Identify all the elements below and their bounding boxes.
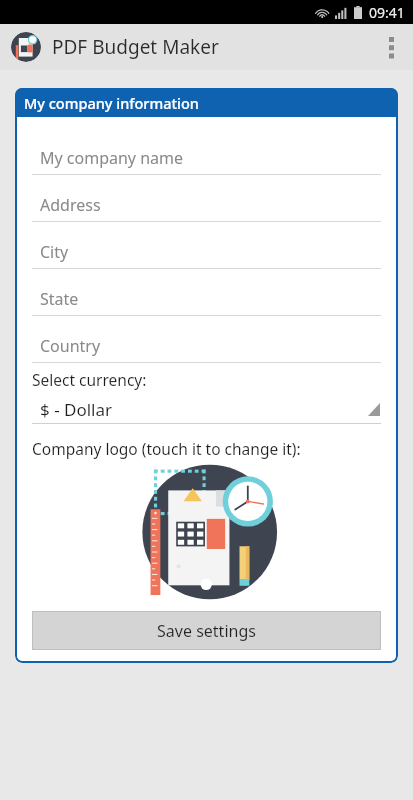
button[interactable]: [11, 32, 41, 62]
staticText: Save settings: [157, 620, 256, 642]
button[interactable]: My company name: [32, 128, 381, 175]
staticText: Company logo (touch it to change it):: [32, 438, 301, 459]
staticText: PDF Budget Maker: [52, 34, 219, 60]
staticText: 09:41: [369, 3, 405, 22]
staticText: Select currency:: [32, 369, 147, 390]
button[interactable]: Save settings: [32, 611, 381, 650]
button[interactable]: Country: [32, 316, 381, 363]
button[interactable]: State: [32, 269, 381, 316]
staticText: Address: [40, 194, 101, 216]
staticText: City: [40, 241, 69, 263]
staticText: My company name: [40, 147, 184, 169]
button[interactable]: City: [32, 222, 381, 269]
staticText: State: [40, 288, 79, 310]
staticText: $ - Dollar: [40, 398, 113, 421]
button[interactable]: More options: [369, 24, 413, 70]
button[interactable]: $ - Dollar: [32, 395, 381, 424]
staticText: My company information: [24, 93, 199, 113]
button[interactable]: Address: [32, 175, 381, 222]
button[interactable]: Company logo, tap to change: [139, 467, 275, 597]
staticText: Country: [40, 335, 101, 357]
